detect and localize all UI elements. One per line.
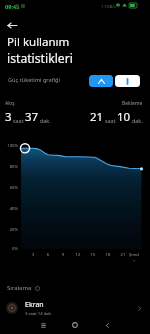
staticText: 9 xyxy=(58,252,68,258)
button[interactable]: Usage chart xyxy=(89,75,113,87)
staticText: 37 xyxy=(25,109,39,125)
staticText: 15 xyxy=(88,252,98,258)
staticText: saat xyxy=(105,117,116,124)
button[interactable]: Battery level xyxy=(115,75,140,87)
staticText: Güç tüketimi grafiği xyxy=(8,76,60,84)
staticText: 09:43 xyxy=(5,3,20,11)
button[interactable]: Ekran xyxy=(0,296,150,320)
staticText: Akış xyxy=(5,100,15,107)
staticText: 1.1KB/s xyxy=(101,4,116,10)
button[interactable]: Back xyxy=(98,316,116,334)
staticText: dak. xyxy=(132,117,143,124)
staticText: 3 xyxy=(28,252,38,258)
staticText: Şimdi xyxy=(129,252,139,264)
staticText: saat xyxy=(13,117,24,124)
staticText: 3 xyxy=(5,109,12,125)
staticText: 12 xyxy=(73,252,83,258)
staticText: dak. xyxy=(40,117,51,124)
staticText: 60% xyxy=(0,185,18,191)
button[interactable]: Home xyxy=(66,316,84,334)
staticText: Pil kullanım xyxy=(7,34,70,50)
staticText: 3 saat 14 dak. xyxy=(25,311,52,317)
staticText: 20% xyxy=(0,227,18,233)
staticText: 100% xyxy=(0,143,18,149)
button[interactable]: Back xyxy=(3,16,21,34)
staticText: Ekran xyxy=(25,300,44,310)
staticText: 21 xyxy=(90,109,104,125)
staticText: 6 xyxy=(43,252,53,258)
staticText: 21 xyxy=(118,252,128,258)
staticText: istatistikleri xyxy=(7,50,73,67)
staticText: 40% xyxy=(0,206,18,212)
button[interactable]: Recent apps xyxy=(34,316,52,334)
staticText: 80% xyxy=(0,164,18,170)
staticText: 10 xyxy=(117,109,131,125)
staticText: Sıralama xyxy=(7,284,32,292)
staticText: 18 xyxy=(103,252,113,258)
staticText: 0% xyxy=(0,246,18,252)
staticText: Bekleme xyxy=(122,100,143,107)
